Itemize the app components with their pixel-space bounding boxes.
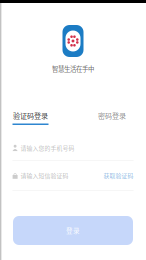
staticText: 密码登录 <box>98 110 126 120</box>
button[interactable]: 获取验证码 <box>103 171 133 180</box>
button[interactable]: 密码登录 <box>97 110 126 125</box>
staticText: 验证码登录 <box>13 110 48 120</box>
staticText: 请输入短信验证码 <box>20 171 68 180</box>
staticText: 登录 <box>66 226 80 235</box>
staticText: 获取验证码 <box>103 171 133 180</box>
button[interactable]: 验证码登录 <box>12 110 48 125</box>
button[interactable]: 登录 <box>13 216 133 245</box>
staticText: 请输入您的手机号码 <box>20 144 74 152</box>
staticText: 智慧生活在手中 <box>52 64 94 73</box>
